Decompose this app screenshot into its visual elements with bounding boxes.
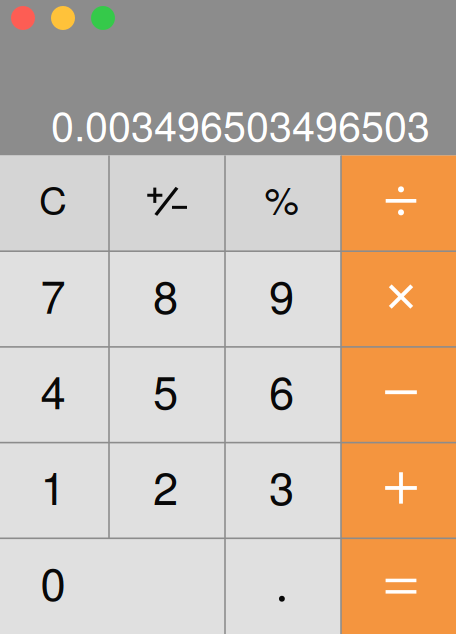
button[interactable]: 0 — [0, 538, 225, 634]
button[interactable]: C — [0, 155, 109, 251]
staticText: 6 — [269, 357, 294, 422]
staticText: % — [265, 171, 299, 226]
staticText: 1 — [41, 453, 66, 518]
button[interactable]: Change sign — [109, 155, 225, 251]
button[interactable]: 1 — [0, 443, 109, 538]
button[interactable]: 4 — [0, 347, 109, 443]
staticText: 8 — [153, 262, 178, 326]
button[interactable]: 2 — [109, 443, 225, 538]
staticText: 0 — [41, 549, 66, 614]
button[interactable]: 5 — [109, 347, 225, 443]
button[interactable]: Divide — [341, 155, 456, 251]
staticText: 5 — [153, 357, 178, 422]
staticText: 7 — [41, 262, 66, 326]
staticText: C — [39, 171, 67, 226]
button[interactable]: % — [225, 155, 341, 251]
button[interactable]: 8 — [109, 251, 225, 347]
button[interactable]: Multiply — [341, 251, 456, 347]
button[interactable]: 9 — [225, 251, 341, 347]
button[interactable]: Close — [11, 6, 35, 30]
button[interactable]: Zoom — [91, 6, 115, 30]
staticText: 2 — [153, 453, 178, 518]
button[interactable]: 7 — [0, 251, 109, 347]
button[interactable]: 3 — [225, 443, 341, 538]
staticText: 0.003496503496503 — [51, 94, 430, 153]
button[interactable]: Subtract — [341, 347, 456, 443]
staticText: 4 — [41, 357, 66, 422]
button[interactable]: Decimal point — [225, 538, 341, 634]
button[interactable]: 6 — [225, 347, 341, 443]
button[interactable]: Add — [341, 443, 456, 538]
staticText: 9 — [269, 262, 294, 326]
button[interactable]: Minimize — [51, 6, 75, 30]
button[interactable]: Equals — [341, 538, 456, 634]
staticText: 3 — [269, 453, 294, 518]
